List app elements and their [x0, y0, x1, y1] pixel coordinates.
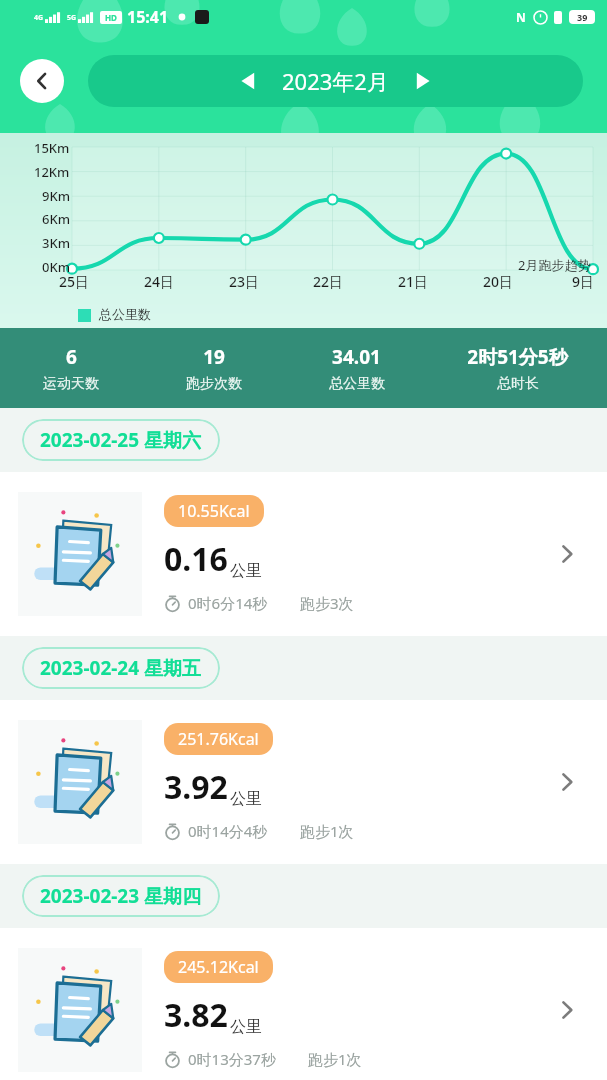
button[interactable]: 19	[142, 328, 285, 408]
staticText: 9Km	[42, 187, 70, 205]
button[interactable]: Open detail	[545, 760, 589, 804]
staticText: 24日	[144, 272, 175, 291]
staticText: 22日	[313, 272, 344, 291]
staticText: 0时14分4秒	[188, 821, 268, 841]
button[interactable]: 6	[0, 328, 142, 408]
staticText: 2023-02-24 星期五	[40, 655, 202, 681]
staticText: N	[516, 9, 526, 25]
staticText: 总公里数	[329, 375, 385, 393]
staticText: 公里	[230, 1017, 262, 1037]
staticText: 9日	[572, 272, 595, 291]
button[interactable]: 251.76Kcal	[0, 700, 607, 864]
staticText: 15Km	[34, 139, 70, 157]
staticText: 2时51分5秒	[467, 344, 568, 370]
button[interactable]: 2023-02-23 星期四	[22, 875, 220, 917]
staticText: 10.55Kcal	[178, 500, 250, 522]
staticText: 23日	[229, 272, 260, 291]
staticText: 总时长	[497, 375, 539, 393]
staticText: 0.16	[164, 537, 228, 581]
staticText: 2023-02-25 星期六	[40, 427, 202, 453]
staticText: 跑步次数	[186, 375, 242, 393]
staticText: 6	[66, 344, 77, 370]
staticText: 15:41	[127, 6, 169, 28]
button[interactable]: 2023-02-25 星期六	[22, 419, 220, 461]
staticText: 25日	[59, 272, 90, 291]
button[interactable]: 2时51分5秒	[428, 328, 607, 408]
staticText: 2023年2月	[282, 66, 389, 96]
button[interactable]: Back	[20, 59, 64, 103]
staticText: 245.12Kcal	[178, 956, 259, 978]
staticText: 运动天数	[43, 375, 99, 393]
button[interactable]: 245.12Kcal	[0, 928, 607, 1080]
staticText: 公里	[230, 561, 262, 581]
staticText: 0Km	[42, 258, 70, 276]
staticText: 12Km	[34, 163, 70, 181]
staticText: 3Km	[42, 234, 70, 252]
staticText: 20日	[483, 272, 514, 291]
staticText: 251.76Kcal	[178, 728, 259, 750]
staticText: 3.82	[164, 993, 228, 1037]
staticText: 公里	[230, 789, 262, 809]
staticText: 总公里数	[99, 306, 151, 322]
staticText: 19	[203, 344, 225, 370]
staticText: 34.01	[332, 344, 381, 370]
staticText: 6Km	[42, 210, 70, 228]
button[interactable]: Previous month	[88, 55, 583, 107]
staticText: 5G	[67, 13, 77, 23]
staticText: 3.92	[164, 765, 228, 809]
button[interactable]: Previous month	[228, 61, 268, 101]
staticText: 0时6分14秒	[188, 593, 268, 613]
button[interactable]: Open detail	[545, 988, 589, 1032]
staticText: 跑步1次	[300, 821, 354, 841]
button[interactable]: 34.01	[285, 328, 428, 408]
staticText: 39	[577, 11, 588, 23]
button[interactable]: Next month	[403, 61, 443, 101]
button[interactable]: 10.55Kcal	[0, 472, 607, 636]
staticText: 2023-02-23 星期四	[40, 883, 202, 909]
button[interactable]: 2023-02-24 星期五	[22, 647, 220, 689]
button[interactable]: Open detail	[545, 532, 589, 576]
staticText: HD	[105, 12, 117, 23]
staticText: 0时13分37秒	[188, 1049, 276, 1069]
staticText: 21日	[398, 272, 429, 291]
staticText: 2月跑步趋势	[518, 256, 591, 274]
staticText: 跑步1次	[308, 1049, 362, 1069]
staticText: 4G	[34, 13, 44, 23]
staticText: 跑步3次	[300, 593, 354, 613]
